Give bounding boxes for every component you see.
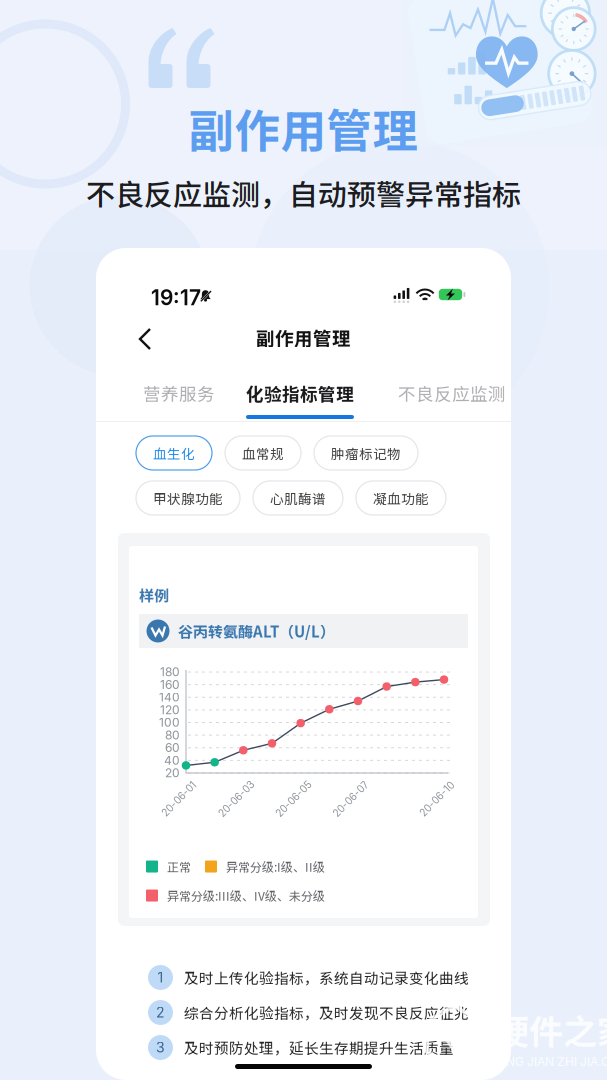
button[interactable]: 凝血功能 [356,481,446,515]
button[interactable]: 营养服务 [143,378,215,408]
button[interactable]: 血生化 [136,436,212,470]
staticText: 40 [164,753,180,768]
button[interactable]: 返回 [126,316,164,362]
staticText: 副作用管理 [256,324,351,351]
staticText: 正常 [167,858,191,875]
button[interactable]: 甲状腺功能 [136,481,240,515]
staticText: 1 [157,969,163,986]
staticText: 20 [165,766,180,780]
staticText: 凝血功能 [373,488,429,508]
staticText: 及时上传化验指标，系统自动记录变化曲线 [184,967,469,988]
staticText: 20-06-10 [415,793,459,805]
staticText: 19:17 [151,285,201,310]
staticText: 20-06-05 [271,793,317,805]
staticText: 120 [160,703,180,717]
staticText: 140 [159,690,180,704]
staticText: 3 [156,1039,165,1056]
staticText: 及时预防处理，延长生存期提升生活质量 [184,1037,454,1058]
staticText: 血常规 [242,443,284,463]
button[interactable]: 血常规 [225,436,301,470]
staticText: 营养服务 [143,380,215,406]
button[interactable]: 心肌酶谱 [253,481,343,515]
staticText: 160 [160,677,180,692]
staticText: 100 [159,715,180,730]
button[interactable]: 1 [118,960,490,995]
staticText: 20-06-07 [328,793,374,805]
staticText: 不良反应监测 [398,380,506,406]
staticText: 180 [160,665,180,679]
staticText: YING JIAN ZHI JIA.COM [495,1054,607,1069]
staticText: 样例 [139,584,169,606]
staticText: 综合分析化验指标，及时发现不良反应征兆 [184,1002,469,1023]
button[interactable]: 2 [118,995,490,1030]
staticText: 肿瘤标记物 [331,443,401,463]
staticText: 心肌酶谱 [270,488,326,508]
button[interactable]: 肿瘤标记物 [314,436,418,470]
staticText: 80 [165,728,180,742]
button[interactable]: 不良反应监测 [398,378,506,408]
staticText: 20-06-01 [157,793,201,805]
staticText: 化验指标管理 [246,380,354,406]
staticText: 20-06-03 [213,793,259,805]
staticText: 硬件之家 [495,1005,607,1054]
staticText: 2 [156,1004,165,1021]
staticText: 不良反应监测，自动预警异常指标 [86,172,521,214]
staticText: 副作用管理 [188,95,418,161]
staticText: 异常分级:III级、IV级、未分级 [167,887,325,904]
staticText: 异常分级:I级、II级 [226,858,325,875]
staticText: 甲状腺功能 [153,488,223,508]
staticText: 谷丙转氨酶ALT（U/L） [178,620,335,642]
button[interactable]: 3 [118,1030,490,1065]
staticText: 60 [165,740,180,755]
button[interactable]: 化验指标管理 [246,378,354,419]
staticText: 血生化 [153,443,195,463]
